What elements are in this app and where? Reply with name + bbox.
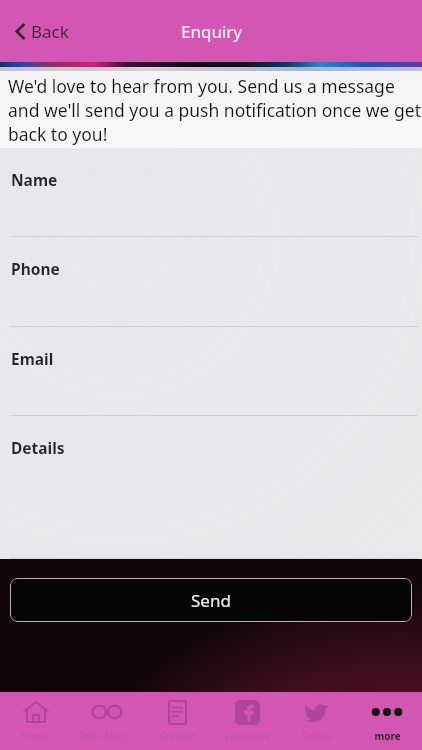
staticText: Phone [11,258,60,279]
button[interactable]: Twitter [282,692,352,750]
staticText: Back [31,20,69,43]
button[interactable]: Name [0,148,422,237]
staticText: Enquiry [181,20,242,43]
staticText: Facebook [225,729,270,743]
button[interactable]: Phone [0,237,422,327]
staticText: Contact [159,729,196,743]
button[interactable]: Facebook [212,692,282,750]
staticText: We'd love to hear from you. Send us a me… [8,74,422,146]
button[interactable]: Send [10,578,412,622]
button[interactable]: Back [10,12,75,51]
staticText: Name [11,169,58,190]
button[interactable]: Details [0,416,422,559]
staticText: Send [191,589,231,612]
staticText: Twitter [301,729,334,743]
staticText: Email [11,348,54,369]
button[interactable]: Email [0,327,422,416]
button[interactable]: more [352,692,422,750]
button[interactable]: Tinks Magi... [71,692,142,750]
button[interactable]: Home [0,692,71,750]
staticText: Details [11,437,65,458]
staticText: Tinks Magi... [77,729,136,743]
staticText: more [374,729,401,743]
button[interactable]: Contact [142,692,212,750]
staticText: Home [21,729,50,743]
